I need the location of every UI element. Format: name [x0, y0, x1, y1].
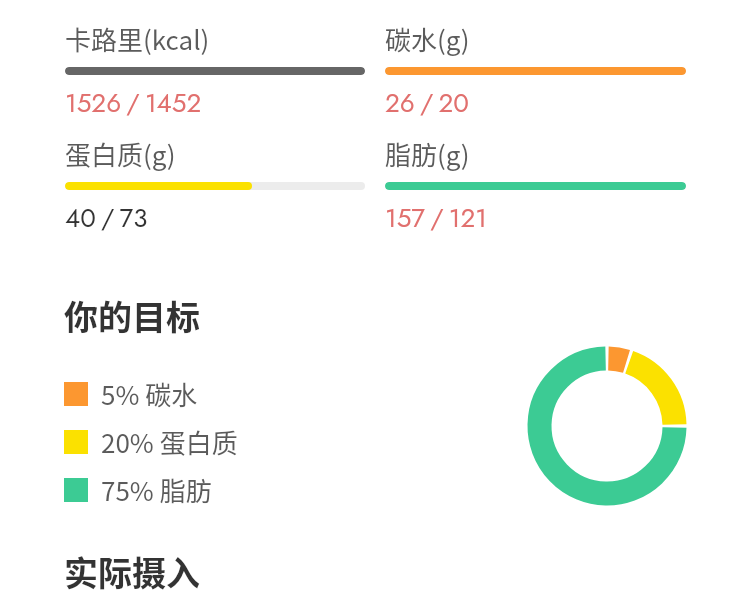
button[interactable]: 营养素比例环形图	[527, 346, 687, 506]
staticText: 脂肪(g)	[385, 135, 470, 173]
staticText: 157 / 121	[385, 199, 487, 237]
staticText: 碳水(g)	[385, 20, 470, 58]
staticText: 40 / 73	[65, 199, 148, 237]
staticText: 实际摄入	[64, 547, 200, 596]
button[interactable]: 20% 蛋白质	[64, 416, 238, 468]
button[interactable]: 碳水(g)	[385, 18, 686, 122]
staticText: 1526 / 1452	[65, 84, 202, 122]
staticText: 卡路里(kcal)	[65, 20, 210, 58]
staticText: 75% 脂肪	[101, 471, 212, 509]
button[interactable]: 蛋白质(g)	[65, 133, 365, 237]
staticText: 20% 蛋白质	[101, 423, 238, 461]
staticText: 5% 碳水	[101, 375, 198, 413]
button[interactable]: 卡路里(kcal)	[65, 18, 365, 122]
button[interactable]: 5% 碳水	[64, 368, 198, 420]
button[interactable]: 75% 脂肪	[64, 464, 212, 516]
staticText: 26 / 20	[385, 84, 469, 122]
staticText: 蛋白质(g)	[65, 135, 176, 173]
button[interactable]: 脂肪(g)	[385, 133, 686, 237]
staticText: 你的目标	[64, 291, 200, 340]
